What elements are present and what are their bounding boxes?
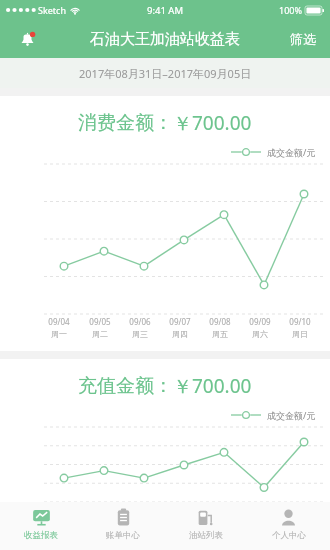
staticText: Sketch: [38, 4, 66, 16]
staticText: 周一: [51, 329, 67, 339]
button[interactable]: Notifications: [14, 26, 40, 52]
staticText: 09/08: [209, 316, 231, 327]
staticText: 成交金额/元: [267, 409, 316, 421]
staticText: 充值金额：: [78, 374, 173, 398]
button[interactable]: 账单中心: [82, 502, 164, 550]
staticText: 周四: [172, 329, 188, 339]
staticText: 石油大王加油站收益表: [90, 30, 240, 49]
staticText: 收益报表: [24, 530, 58, 541]
staticText: ￥700.00: [173, 110, 252, 136]
staticText: 09/04: [48, 316, 70, 327]
staticText: 09/09: [249, 316, 271, 327]
staticText: 油站列表: [189, 530, 223, 541]
staticText: 09/05: [89, 316, 111, 327]
staticText: 周日: [292, 329, 308, 339]
staticText: 2017年08月31日–2017年09月05日: [79, 66, 252, 81]
button[interactable]: 2017年08月31日–2017年09月05日: [0, 58, 330, 88]
button[interactable]: 收益报表: [0, 502, 82, 550]
button[interactable]: 个人中心: [247, 502, 330, 550]
staticText: 个人中心: [272, 530, 306, 541]
staticText: 消费金额：: [78, 111, 173, 135]
staticText: 100%: [279, 4, 302, 16]
staticText: 成交金额/元: [267, 146, 316, 158]
staticText: 周五: [212, 329, 228, 339]
staticText: 09/07: [169, 316, 191, 327]
button[interactable]: 油站列表: [164, 502, 247, 550]
staticText: ￥700.00: [173, 373, 252, 399]
staticText: 周二: [92, 329, 108, 339]
staticText: 9:41 AM: [147, 4, 184, 17]
staticText: 09/06: [129, 316, 151, 327]
staticText: 周三: [132, 329, 148, 339]
staticText: 账单中心: [106, 530, 140, 541]
staticText: 周六: [252, 329, 268, 339]
button[interactable]: 筛选: [276, 23, 330, 55]
staticText: 筛选: [290, 31, 316, 47]
staticText: 09/10: [289, 316, 311, 327]
